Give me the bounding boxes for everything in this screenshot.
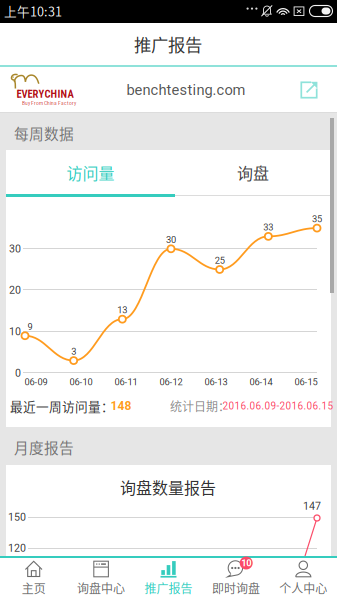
button[interactable]: 10 (202, 558, 270, 600)
staticText: 即时询盘 (212, 579, 260, 597)
staticText: 0 (15, 367, 21, 379)
button[interactable]: 询盘 (175, 150, 331, 195)
staticText: 个人中心 (279, 579, 327, 597)
staticText: 06-14 (249, 376, 272, 387)
staticText: 06-11 (114, 376, 137, 387)
staticText: 10 (9, 325, 21, 338)
staticText: 150 (8, 511, 26, 523)
staticText: 35 (312, 214, 322, 224)
staticText: 统计日期： (170, 397, 230, 415)
staticText: 30 (9, 242, 21, 255)
staticText: 推广报告 (134, 31, 202, 57)
staticText: 2016.06.09-2016.06.15 (222, 400, 333, 412)
staticText: 每周数据 (14, 122, 74, 144)
staticText: EVERYCHINA (16, 88, 73, 100)
staticText: 主页 (22, 579, 46, 597)
staticText: 06-10 (69, 376, 92, 387)
staticText: 120 (8, 542, 26, 554)
staticText: 30 (166, 234, 176, 245)
staticText: 询盘中心 (77, 579, 125, 597)
button[interactable]: 个人中心 (270, 558, 337, 600)
button[interactable]: Open website in browser (286, 67, 332, 113)
staticText: 13 (117, 305, 127, 316)
staticText: 9 (27, 321, 32, 332)
button[interactable]: 主页 (0, 558, 67, 600)
staticText: 询盘 (237, 161, 269, 184)
button[interactable]: 访问量 (6, 150, 175, 195)
staticText: 访问量 (66, 161, 114, 184)
staticText: 06-13 (204, 376, 227, 387)
staticText: 询盘数量报告 (120, 475, 216, 499)
staticText: 10 (241, 557, 251, 568)
staticText: 最近一周访问量： (10, 397, 114, 415)
staticText: 06-15 (294, 376, 317, 387)
staticText: Buy From China Factory (22, 100, 76, 106)
staticText: 06-12 (159, 376, 182, 387)
button[interactable]: 询盘中心 (67, 558, 135, 600)
staticText: benchtesting.com (126, 81, 245, 99)
staticText: 33 (263, 222, 273, 233)
staticText: 25 (215, 255, 225, 266)
staticText: 06-09 (24, 376, 47, 387)
staticText: 推广报告 (144, 579, 192, 597)
staticText: 148 (110, 399, 131, 413)
button[interactable]: 推广报告 (135, 558, 202, 600)
staticText: 月度报告 (14, 436, 74, 458)
staticText: 147 (303, 500, 321, 512)
staticText: 上午10:31 (4, 2, 62, 20)
staticText: 20 (9, 284, 21, 296)
staticText: 3 (71, 346, 76, 357)
